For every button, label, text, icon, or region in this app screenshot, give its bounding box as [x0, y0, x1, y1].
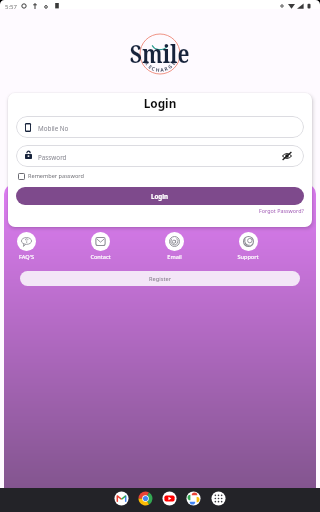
staticText: Mobile No [38, 124, 69, 133]
button[interactable]: Support [228, 232, 268, 261]
staticText: Login [8, 95, 312, 111]
staticText: C [150, 65, 157, 73]
staticText: E [170, 60, 177, 66]
staticText: E [147, 63, 153, 71]
button[interactable]: All apps [211, 491, 226, 506]
button[interactable]: Password [16, 145, 304, 167]
staticText: Contact [90, 253, 111, 261]
staticText: Register [149, 275, 172, 283]
button[interactable]: Chrome [138, 491, 153, 506]
staticText: Password [38, 153, 67, 162]
button[interactable]: Mobile No [16, 116, 304, 138]
button[interactable]: Email [154, 232, 194, 261]
staticText: Login [151, 192, 169, 200]
button[interactable]: Contact [80, 232, 120, 261]
button[interactable]: YouTube [162, 491, 177, 506]
staticText: Email [167, 253, 182, 261]
button[interactable]: Register [20, 271, 300, 286]
staticText: Remember password [28, 172, 84, 180]
button[interactable]: Remember password [18, 172, 84, 180]
staticText: 5:57 [5, 3, 17, 11]
staticText: R [163, 65, 170, 73]
staticText: H [155, 67, 160, 74]
staticText: FAQ'S [19, 253, 34, 261]
button[interactable]: Gmail [114, 491, 129, 506]
staticText: Support [237, 253, 259, 261]
staticText: R [143, 60, 151, 67]
staticText: Smile [130, 36, 190, 70]
button[interactable]: Show password [280, 149, 294, 163]
button[interactable]: FAQ'S [6, 232, 46, 261]
staticText: A [160, 67, 165, 74]
button[interactable]: Forgot Password? [259, 207, 304, 214]
staticText: G [166, 63, 174, 71]
button[interactable]: Photos [186, 491, 201, 506]
button[interactable]: Login [16, 187, 304, 205]
